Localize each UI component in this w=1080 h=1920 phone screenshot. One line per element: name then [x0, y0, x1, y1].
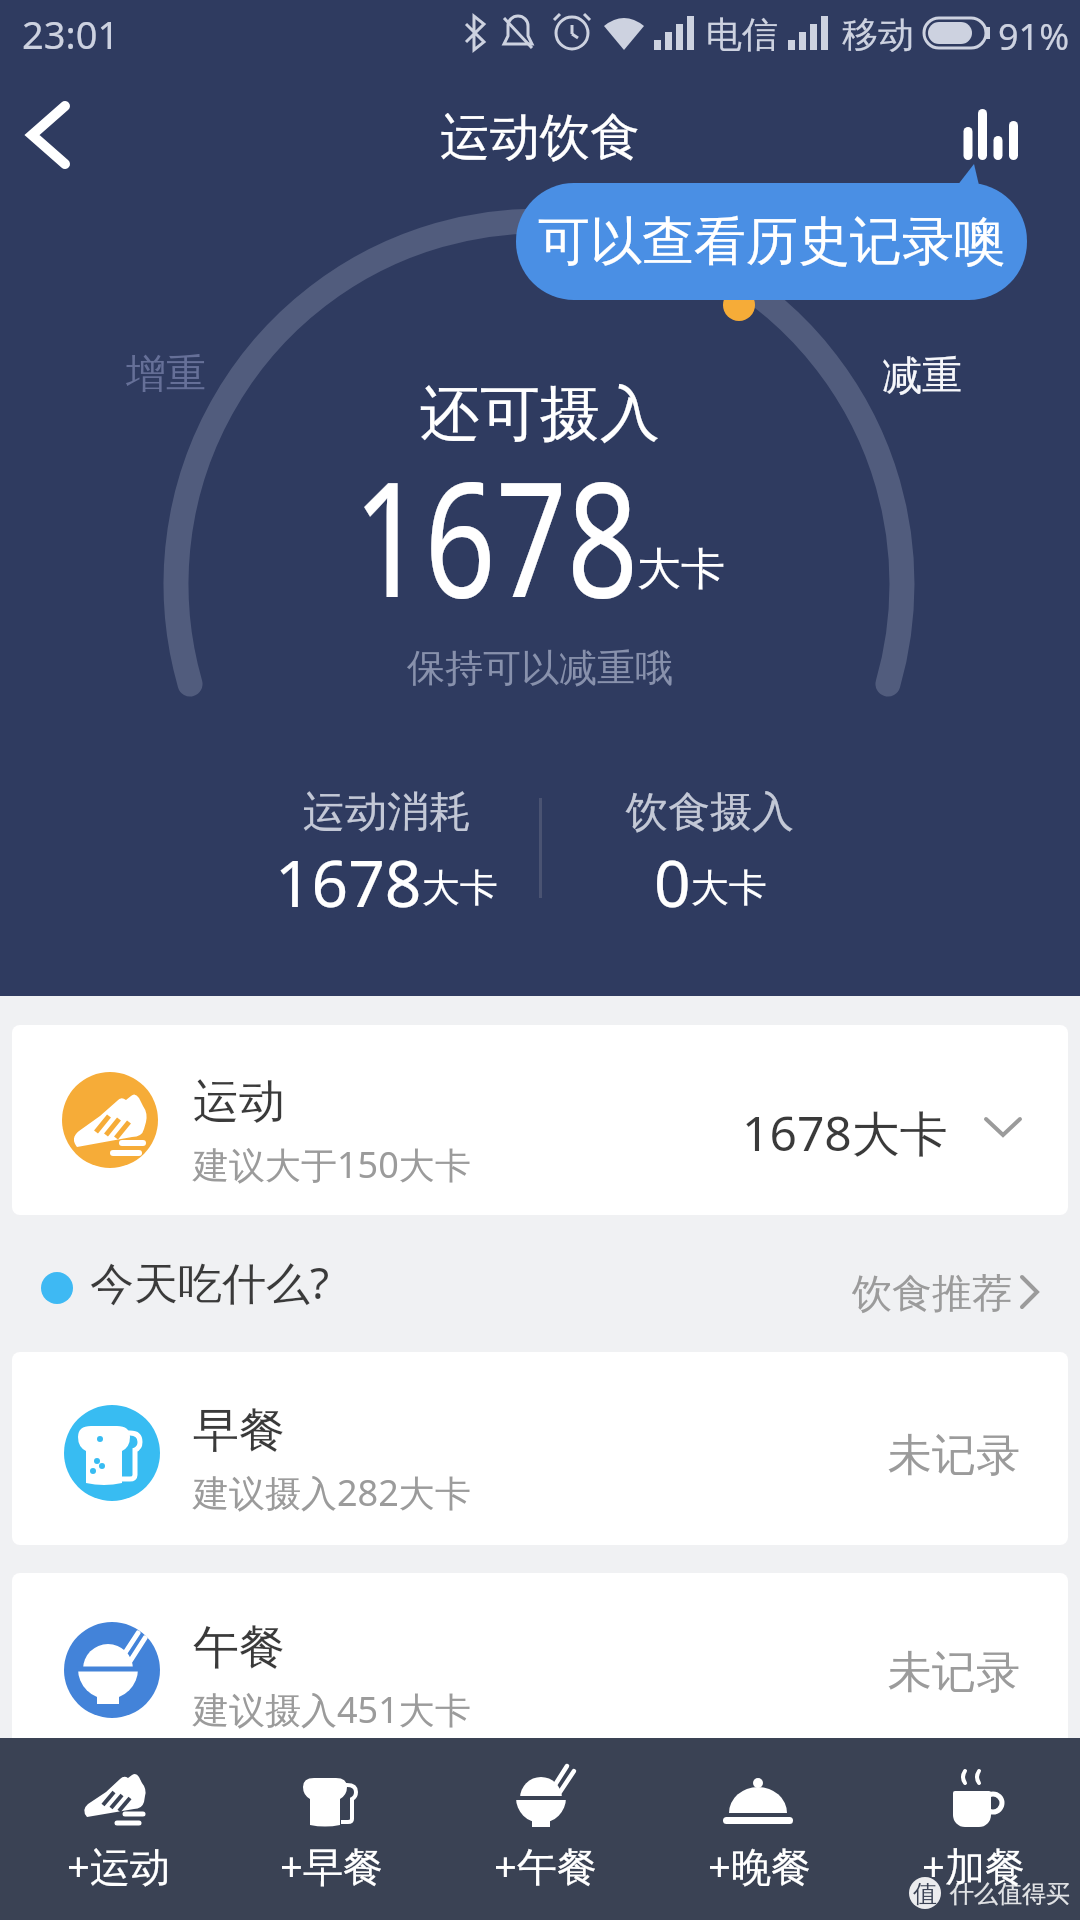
staticText: 1678大卡: [742, 1100, 948, 1160]
staticText: 建议摄入451大卡: [193, 1685, 471, 1734]
button[interactable]: 运动: [12, 1025, 1068, 1215]
staticText: 运动饮食: [440, 106, 640, 169]
staticText: 午餐: [193, 1619, 285, 1677]
staticText: 未记录: [888, 1645, 1020, 1695]
button[interactable]: [10, 95, 100, 185]
staticText: 值: [913, 1879, 937, 1909]
staticText: 1678: [353, 428, 639, 644]
staticText: 增重: [126, 348, 206, 398]
staticText: 早餐: [193, 1402, 285, 1460]
staticText: +午餐: [494, 1838, 597, 1893]
staticText: 0: [654, 839, 691, 916]
staticText: 减重: [882, 350, 962, 400]
button[interactable]: 饮食推荐: [700, 1268, 1048, 1316]
staticText: 运动: [193, 1073, 285, 1131]
staticText: 可以查看历史记录噢: [538, 209, 1006, 275]
staticText: 建议大于150大卡: [193, 1140, 471, 1189]
button[interactable]: +午餐: [438, 1738, 652, 1920]
staticText: 大卡: [691, 864, 767, 912]
staticText: 什么值得买: [950, 1879, 1070, 1909]
staticText: +早餐: [280, 1838, 383, 1893]
staticText: 移动: [842, 12, 914, 57]
staticText: +晚餐: [708, 1838, 811, 1893]
button[interactable]: +晚餐: [652, 1738, 866, 1920]
button[interactable]: [945, 95, 1035, 185]
button[interactable]: +加餐: [866, 1738, 1080, 1920]
staticText: 91%: [998, 12, 1070, 61]
staticText: 建议摄入282大卡: [193, 1468, 471, 1517]
button[interactable]: +早餐: [225, 1738, 438, 1920]
staticText: 饮食推荐: [852, 1268, 1012, 1316]
staticText: 今天吃什么?: [90, 1252, 330, 1312]
staticText: 运动消耗: [303, 786, 471, 839]
staticText: 23:01: [22, 8, 120, 60]
staticText: 电信: [706, 12, 778, 57]
staticText: +加餐: [922, 1838, 1025, 1893]
staticText: 大卡: [637, 542, 725, 597]
staticText: 还可摄入: [420, 376, 660, 452]
button[interactable]: 早餐: [12, 1352, 1068, 1545]
staticText: 1678: [275, 839, 422, 916]
button[interactable]: +运动: [12, 1738, 225, 1920]
staticText: 保持可以减重哦: [407, 644, 673, 692]
button[interactable]: 午餐: [12, 1573, 1068, 1766]
staticText: 饮食摄入: [626, 786, 794, 839]
staticText: 大卡: [422, 864, 498, 912]
staticText: 未记录: [888, 1428, 1020, 1478]
button[interactable]: 可以查看历史记录噢: [516, 183, 1027, 300]
staticText: +运动: [67, 1838, 170, 1893]
